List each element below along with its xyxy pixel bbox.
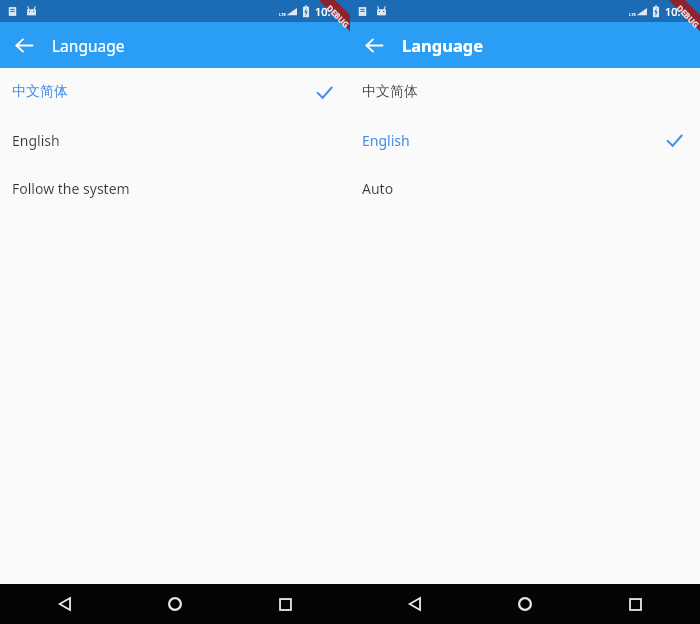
button[interactable]: English bbox=[0, 116, 350, 164]
button[interactable]: Back bbox=[398, 587, 432, 621]
staticText: Language bbox=[402, 34, 484, 56]
button[interactable]: Back bbox=[8, 29, 40, 61]
staticText: Follow the system bbox=[12, 179, 130, 198]
button[interactable]: Recents bbox=[618, 587, 652, 621]
staticText: English bbox=[12, 131, 60, 150]
staticText: 10:10 bbox=[315, 4, 344, 19]
button[interactable]: 中文简体 bbox=[0, 68, 350, 116]
staticText: Auto bbox=[362, 179, 394, 198]
button[interactable]: Home bbox=[158, 587, 192, 621]
button[interactable]: Auto bbox=[350, 164, 700, 212]
staticText: LTE bbox=[279, 12, 286, 17]
staticText: English bbox=[362, 131, 410, 150]
button[interactable]: Home bbox=[508, 587, 542, 621]
button[interactable]: Back bbox=[358, 29, 390, 61]
staticText: 10:10 bbox=[665, 4, 694, 19]
button[interactable]: English bbox=[350, 116, 700, 164]
button[interactable]: 中文简体 bbox=[350, 68, 700, 116]
button[interactable]: Follow the system bbox=[0, 164, 350, 212]
button[interactable]: Back bbox=[48, 587, 82, 621]
staticText: Language bbox=[52, 35, 125, 56]
staticText: LTE bbox=[629, 12, 636, 17]
staticText: 中文简体 bbox=[12, 83, 68, 101]
button[interactable]: Recents bbox=[268, 587, 302, 621]
staticText: 中文简体 bbox=[362, 83, 418, 101]
